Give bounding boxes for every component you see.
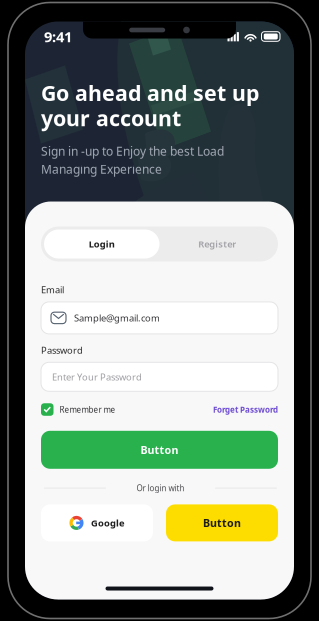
staticText: Sign in -up to Enjoy the best Load: [41, 143, 224, 159]
button[interactable]: Remember me: [41, 403, 115, 416]
staticText: Google: [91, 517, 125, 529]
staticText: Email: [41, 283, 64, 296]
staticText: Go ahead and set up: [41, 78, 259, 107]
button[interactable]: Button: [166, 504, 278, 541]
staticText: Enter Your Password: [52, 371, 142, 383]
button[interactable]: Login: [44, 229, 159, 258]
button[interactable]: Forget Password: [213, 404, 278, 415]
staticText: Button: [140, 443, 178, 457]
button[interactable]: Button: [41, 431, 278, 469]
staticText: Or login with: [136, 483, 184, 493]
staticText: Button: [203, 516, 241, 530]
staticText: 9:41: [44, 27, 72, 46]
staticText: Login: [89, 238, 115, 250]
staticText: Sample@gmail.com: [74, 312, 160, 324]
staticText: Managing Experience: [41, 161, 162, 177]
staticText: Remember me: [59, 404, 115, 415]
staticText: Forget Password: [213, 404, 278, 415]
staticText: Register: [198, 238, 236, 250]
staticText: Password: [41, 344, 83, 356]
button[interactable]: Register: [159, 229, 275, 258]
button[interactable]: Google: [41, 504, 153, 541]
staticText: your account: [41, 104, 181, 132]
